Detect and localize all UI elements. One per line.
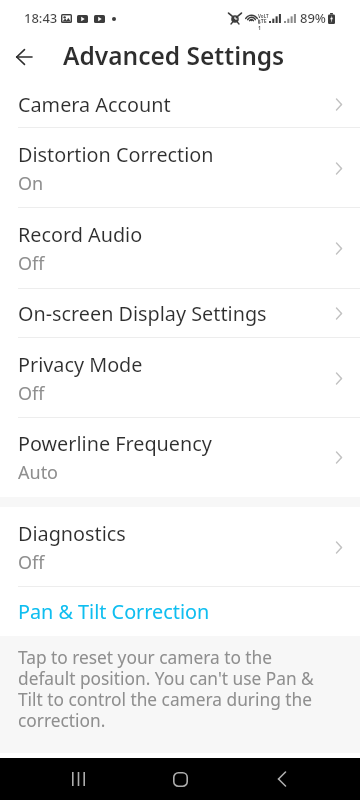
button[interactable]: Privacy Mode	[0, 338, 360, 418]
staticText: Record Audio	[18, 221, 143, 248]
staticText: Camera Account	[18, 91, 171, 118]
button[interactable]: Pan & Tilt Correction	[0, 587, 360, 636]
staticText: Off	[18, 381, 45, 406]
staticText: Privacy Mode	[18, 351, 143, 378]
staticText: On	[18, 171, 44, 196]
button[interactable]: Powerline Frequency	[0, 418, 360, 497]
button[interactable]: Distortion Correction	[0, 128, 360, 208]
button[interactable]: Back	[0, 33, 48, 81]
staticText: Tap to reset your camera to the default …	[18, 646, 323, 733]
button[interactable]: Record Audio	[0, 208, 360, 289]
staticText: Off	[18, 251, 45, 276]
staticText: On-screen Display Settings	[18, 300, 267, 327]
button[interactable]: On-screen Display Settings	[0, 289, 360, 338]
button[interactable]: Home	[156, 758, 204, 800]
staticText: Advanced Settings	[63, 39, 285, 72]
staticText: Diagnostics	[18, 520, 126, 547]
staticText: 18:43	[24, 9, 58, 27]
button[interactable]: Back	[258, 758, 306, 800]
staticText: Pan & Tilt Correction	[18, 598, 210, 625]
staticText: 89%	[300, 9, 326, 27]
staticText: LTE1	[258, 17, 269, 31]
staticText: Auto	[18, 460, 59, 485]
staticText: VoLTE	[258, 13, 269, 25]
staticText: Distortion Correction	[18, 141, 214, 168]
staticText: Powerline Frequency	[18, 430, 212, 457]
button[interactable]: Recent apps	[54, 758, 102, 800]
button[interactable]: Diagnostics	[0, 507, 360, 587]
staticText: Off	[18, 550, 45, 575]
button[interactable]: Camera Account	[0, 80, 360, 128]
